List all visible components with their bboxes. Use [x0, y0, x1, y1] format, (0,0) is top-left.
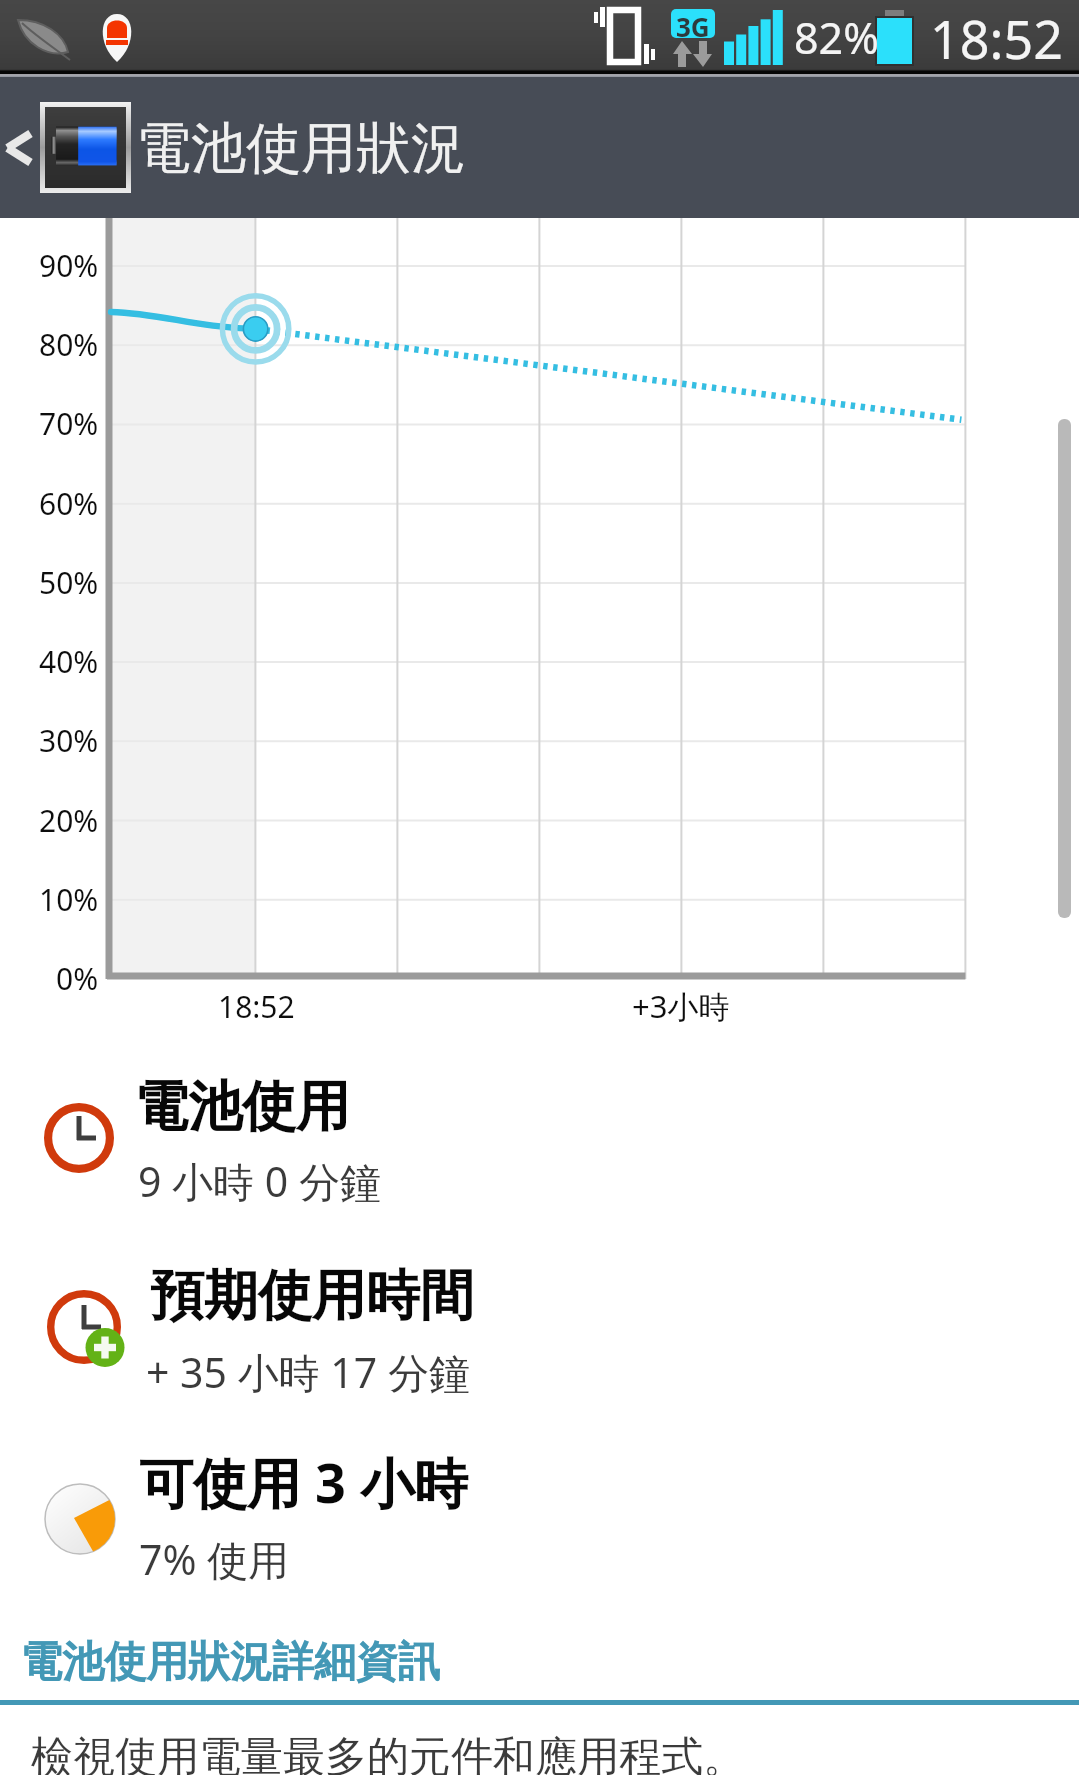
- button[interactable]: Back: [0, 77, 132, 218]
- staticText: 90%: [39, 245, 99, 286]
- staticText: 電池使用狀況詳細資訊: [20, 1636, 440, 1689]
- staticText: 7% 使用: [139, 1531, 290, 1587]
- staticText: 80%: [39, 324, 99, 365]
- staticText: 預期使用時間: [150, 1262, 474, 1330]
- staticText: + 35 小時 17 分鐘: [146, 1344, 470, 1400]
- staticText: 60%: [39, 483, 99, 524]
- staticText: 3G: [676, 9, 710, 38]
- staticText: 40%: [39, 641, 99, 682]
- staticText: 70%: [39, 403, 99, 444]
- button[interactable]: 電池使用狀況詳細資訊: [0, 1619, 1079, 1700]
- staticText: 9 小時 0 分鐘: [138, 1153, 381, 1209]
- staticText: 電池使用狀況: [136, 114, 466, 183]
- staticText: 50%: [39, 562, 99, 603]
- button[interactable]: 可使用 3 小時: [0, 1426, 1079, 1614]
- staticText: 20%: [39, 800, 99, 841]
- staticText: 可使用 3 小時: [139, 1445, 468, 1519]
- staticText: 電池使用: [134, 1073, 350, 1141]
- staticText: 10%: [39, 879, 99, 920]
- button[interactable]: 預期使用時間: [0, 1243, 1079, 1431]
- staticText: 18:52: [218, 986, 295, 1027]
- staticText: 30%: [39, 720, 99, 761]
- button[interactable]: 電池使用: [0, 1054, 1079, 1242]
- staticText: 0%: [56, 958, 99, 999]
- staticText: 18:52: [930, 3, 1063, 74]
- staticText: +3小時: [632, 985, 730, 1027]
- staticText: 82%: [794, 8, 879, 67]
- staticText: 檢視使用電量最多的元件和應用程式。: [31, 1731, 745, 1775]
